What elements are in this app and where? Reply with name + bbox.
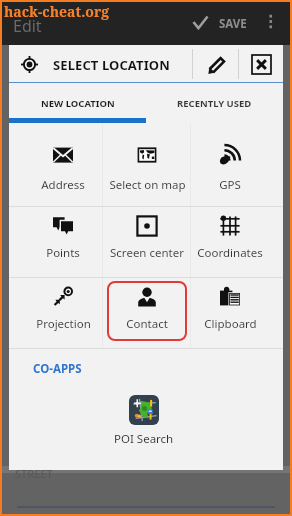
staticText: CO-APPS — [33, 361, 82, 377]
staticText: SELECT LOCATION — [53, 56, 170, 74]
staticText: Coordinates — [197, 245, 263, 261]
button[interactable]: Close — [239, 45, 283, 83]
staticText: POI Search — [114, 431, 174, 447]
staticText: Points — [46, 245, 80, 261]
button[interactable] — [190, 281, 270, 341]
staticText: NEW LOCATION — [41, 97, 115, 110]
staticText: STREET — [15, 466, 53, 481]
button[interactable]: RECENTLY USED — [146, 83, 283, 123]
staticText: RECENTLY USED — [177, 97, 252, 110]
staticText: Address — [41, 177, 85, 193]
button[interactable]: More options — [254, 4, 286, 36]
staticText: Projection — [36, 316, 91, 332]
staticText: Screen center — [110, 245, 184, 261]
button[interactable] — [107, 281, 187, 341]
button[interactable]: POI Search — [104, 395, 184, 447]
staticText: Select on map — [109, 177, 186, 193]
button[interactable] — [23, 281, 103, 341]
button[interactable]: NEW LOCATION — [9, 83, 146, 123]
staticText: GPS — [219, 177, 241, 193]
staticText: Clipboard — [204, 316, 257, 332]
button[interactable]: SAVE — [186, 4, 227, 43]
staticText: Edit — [13, 15, 42, 37]
staticText: hack-cheat.org — [4, 2, 110, 21]
staticText: SAVE — [219, 16, 247, 32]
staticText: Contact — [126, 316, 168, 332]
button[interactable]: Edit — [193, 45, 238, 83]
